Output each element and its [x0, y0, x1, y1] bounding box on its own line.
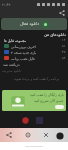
- staticText: دانلودهای من: [44, 32, 66, 37]
- button[interactable]: دانلود فعال: [1, 18, 67, 30]
- button[interactable]: Close: [41, 130, 51, 140]
- staticText: ۸۱: [62, 44, 66, 48]
- staticText: ۱۲: [62, 38, 66, 42]
- button[interactable]: Share: [4, 130, 14, 140]
- staticText: برنامه را نصب کنید و برنده شوید: [14, 76, 60, 81]
- staticText: ۳۷: [62, 50, 66, 54]
- button[interactable]: [55, 105, 64, 109]
- staticText: بازی رایگان را نصب کنید: [30, 92, 64, 97]
- button[interactable]: بازی رایگان را نصب کنید: [2, 90, 66, 111]
- staticText: دانلود فعال: [20, 21, 40, 27]
- button[interactable]: مجموعه فایل ها: [0, 37, 68, 43]
- staticText: همین الان شروع کنید: [34, 98, 64, 103]
- staticText: مجموعه فایل ها: [4, 38, 27, 43]
- button[interactable]: آخرین بروزرسانی: [0, 43, 68, 49]
- staticText: ۲۱:۴۳: [2, 2, 11, 7]
- button[interactable]: بازی جدید نسخه ۲: [0, 49, 68, 55]
- staticText: بازی جدید نسخه ۲: [11, 50, 37, 55]
- button[interactable]: Bookmark: [23, 130, 33, 140]
- staticText: آخرین بروزرسانی: [11, 44, 36, 49]
- staticText: دانلود مدیریت: [2, 68, 22, 73]
- button[interactable]: Tabs: [54, 130, 65, 141]
- button[interactable]: Share: [57, 8, 67, 18]
- staticText: دریافت شد: [3, 62, 20, 67]
- staticText: فایل نصب برنامه: [11, 56, 35, 61]
- staticText: ۵۲: [62, 56, 66, 60]
- button[interactable]: فایل نصب برنامه: [0, 55, 68, 61]
